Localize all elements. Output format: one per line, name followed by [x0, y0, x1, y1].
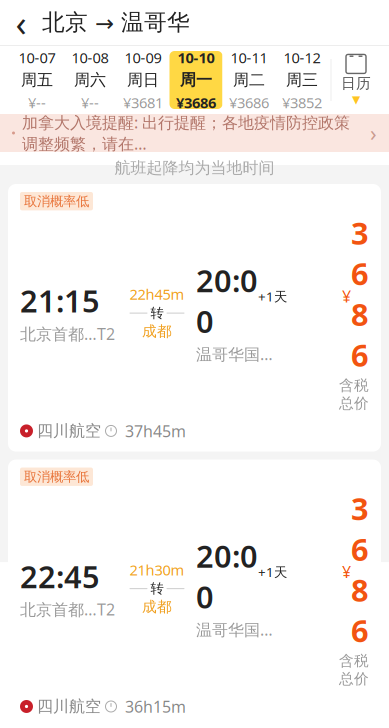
staticText: ¥ — [342, 561, 351, 582]
staticText: › — [370, 119, 377, 147]
staticText: 3686 — [351, 212, 369, 375]
staticText: +1天 — [258, 287, 287, 305]
button[interactable]: 10-08 — [63, 51, 116, 109]
staticText: 温哥华国… — [196, 343, 273, 365]
button[interactable]: 10-12 — [275, 51, 328, 109]
button[interactable]: 10-09 — [116, 51, 169, 109]
staticText: ¥-- — [28, 93, 46, 112]
staticText: 成都 — [142, 322, 172, 340]
staticText: 10-09 — [124, 48, 161, 67]
staticText: 周三 — [286, 70, 318, 90]
staticText: 含税总价 — [339, 652, 369, 688]
staticText: 10-08 — [71, 48, 108, 67]
staticText: 10-07 — [18, 48, 55, 67]
staticText: 加拿大入境提醒: 出行提醒；各地疫情防控政策调整频繁，请在… — [22, 112, 350, 154]
staticText: ¥-- — [81, 93, 99, 112]
staticText: 周五 — [21, 70, 53, 90]
staticText: 北京首都…T2 — [20, 323, 115, 344]
staticText: 成都 — [142, 598, 172, 616]
staticText: ‹ — [15, 0, 26, 46]
staticText: 21:15 — [20, 280, 100, 321]
staticText: 转 — [150, 580, 163, 597]
staticText: 21h30m — [129, 560, 184, 579]
staticText: 北京首都…T2 — [20, 599, 115, 620]
staticText: 22:45 — [20, 556, 100, 597]
staticText: 3686 — [351, 488, 369, 651]
staticText: 37h45m — [125, 420, 186, 441]
staticText: ¥3686 — [176, 93, 216, 112]
staticText: 取消概率低 — [24, 193, 89, 209]
staticText: 周一 — [180, 70, 212, 90]
staticText: 20:00 — [196, 260, 258, 341]
staticText: 转 — [150, 305, 163, 321]
staticText: 36h15m — [125, 696, 186, 717]
button[interactable]: Back — [0, 0, 42, 44]
staticText: 四川航空 — [37, 697, 101, 716]
staticText: 10-12 — [283, 48, 320, 67]
staticText: 北京 → 温哥华 — [42, 9, 190, 36]
staticText: 四川航空 — [37, 421, 101, 441]
staticText: 22h45m — [129, 284, 184, 304]
staticText: 航班起降均为当地时间 — [114, 158, 274, 178]
staticText: 取消概率低 — [24, 469, 89, 485]
button[interactable]: 10-07 — [10, 51, 63, 109]
button[interactable]: 10-10 — [169, 51, 222, 109]
button[interactable]: 日历 — [333, 49, 378, 111]
staticText: 含税总价 — [339, 376, 369, 412]
staticText: ¥ — [342, 286, 351, 307]
staticText: 周二 — [233, 70, 265, 90]
staticText: ¥3681 — [123, 93, 163, 112]
staticText: 温哥华国… — [196, 619, 273, 640]
staticText: 周日 — [127, 70, 159, 90]
staticText: 10-11 — [230, 48, 267, 67]
staticText: 10-10 — [177, 48, 214, 67]
staticText: ¥3686 — [229, 93, 269, 112]
button[interactable]: 10-11 — [222, 51, 275, 109]
button[interactable]: 取消概率低 — [8, 460, 381, 727]
button[interactable]: 加拿大入境提醒: 出行提醒；各地疫情防控政策调整频繁，请在… — [0, 114, 389, 152]
button[interactable]: 取消概率低 — [8, 184, 381, 452]
staticText: ▼ — [352, 93, 360, 106]
staticText: 日历 — [341, 74, 371, 92]
staticText: 20:00 — [196, 535, 258, 617]
staticText: 周六 — [74, 70, 106, 90]
staticText: +1天 — [258, 563, 287, 581]
staticText: ¥3852 — [282, 93, 322, 112]
